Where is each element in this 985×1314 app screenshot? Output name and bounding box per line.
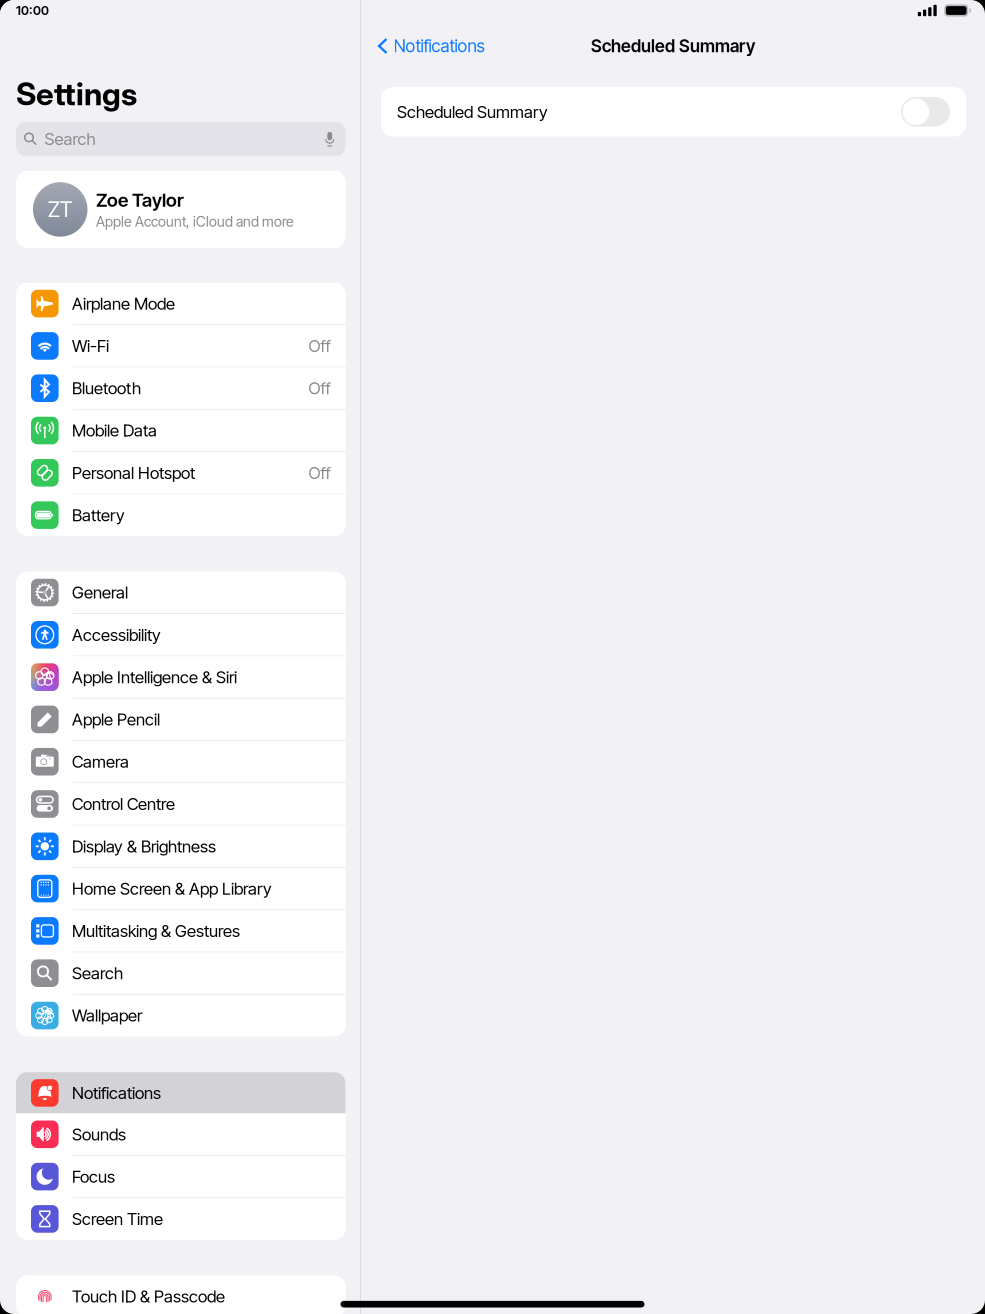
staticText: Display & Brightness xyxy=(72,836,216,856)
button[interactable]: Apple Intelligence & Siri xyxy=(16,656,345,698)
staticText: Wi-Fi xyxy=(72,336,109,356)
button[interactable]: Mobile Data xyxy=(16,410,345,451)
button[interactable]: Wi-Fi xyxy=(16,325,345,367)
button[interactable]: Notifications xyxy=(16,1072,345,1114)
staticText: ZT xyxy=(48,196,73,222)
staticText: Scheduled Summary xyxy=(591,35,755,56)
staticText: Off xyxy=(308,336,330,356)
staticText: Focus xyxy=(72,1166,115,1187)
staticText: Personal Hotspot xyxy=(72,463,195,483)
button[interactable]: Display & Brightness xyxy=(16,826,345,867)
staticText: Off xyxy=(308,378,330,398)
staticText: Wallpaper xyxy=(72,1005,142,1026)
button[interactable]: Airplane Mode xyxy=(16,283,345,324)
button[interactable]: Personal Hotspot xyxy=(16,452,345,493)
staticText: Home Screen & App Library xyxy=(72,878,272,899)
button[interactable]: Search xyxy=(16,952,345,994)
staticText: Search xyxy=(44,129,95,149)
staticText: Off xyxy=(308,463,330,483)
button[interactable]: ZT xyxy=(0,171,360,248)
button[interactable]: Home Screen & App Library xyxy=(16,868,345,909)
button[interactable]: Sounds xyxy=(16,1114,345,1155)
staticText: Settings xyxy=(16,75,137,113)
staticText: Scheduled Summary xyxy=(397,102,548,122)
button[interactable]: Apple Pencil xyxy=(16,699,345,740)
button[interactable]: Bluetooth xyxy=(16,367,345,409)
staticText: 10:00 xyxy=(16,3,49,18)
staticText: Notifications xyxy=(393,35,484,56)
button[interactable]: Accessibility xyxy=(16,614,345,655)
staticText: Screen Time xyxy=(72,1209,163,1229)
staticText: Multitasking & Gestures xyxy=(72,921,240,941)
button[interactable]: Search xyxy=(0,122,360,156)
button[interactable]: Battery xyxy=(16,494,345,536)
staticText: General xyxy=(72,582,128,603)
button[interactable]: Notifications xyxy=(361,26,492,66)
button[interactable]: Multitasking & Gestures xyxy=(16,910,345,952)
staticText: Bluetooth xyxy=(72,378,141,398)
staticText: Apple Pencil xyxy=(72,709,160,729)
staticText: Mobile Data xyxy=(72,420,157,441)
staticText: Airplane Mode xyxy=(72,293,175,314)
button[interactable]: Wallpaper xyxy=(16,995,345,1036)
button[interactable]: Control Centre xyxy=(16,783,345,825)
staticText: Zoe Taylor xyxy=(96,189,184,211)
staticText: Search xyxy=(72,963,123,983)
staticText: Accessibility xyxy=(72,625,161,645)
button[interactable]: Focus xyxy=(16,1156,345,1197)
staticText: Battery xyxy=(72,505,125,525)
staticText: Control Centre xyxy=(72,794,175,814)
staticText: Camera xyxy=(72,751,129,772)
button[interactable]: Camera xyxy=(16,741,345,782)
staticText: Notifications xyxy=(72,1083,161,1103)
button[interactable]: General xyxy=(16,572,345,613)
staticText: Touch ID & Passcode xyxy=(72,1286,225,1306)
staticText: Sounds xyxy=(72,1124,126,1144)
button[interactable]: Scheduled Summary xyxy=(361,87,985,137)
button[interactable]: Touch ID & Passcode xyxy=(16,1276,345,1314)
button[interactable]: Screen Time xyxy=(16,1198,345,1240)
staticText: Apple Account, iCloud and more xyxy=(96,213,294,230)
staticText: Apple Intelligence & Siri xyxy=(72,667,237,687)
